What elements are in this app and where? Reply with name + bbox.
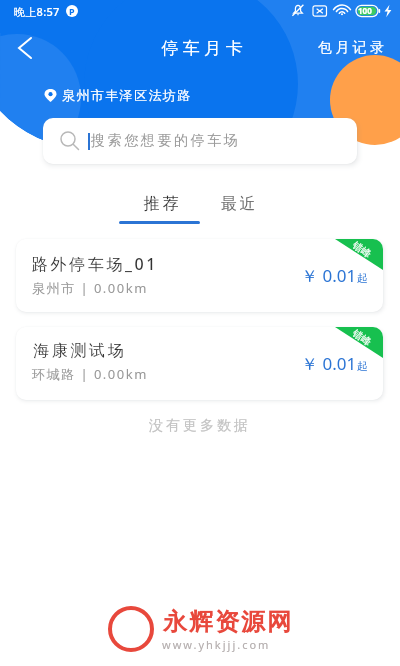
staticText: 搜索您想要的停车场 xyxy=(91,132,241,150)
staticText: 晚上8:57 xyxy=(14,4,60,19)
staticText: 起 xyxy=(357,271,368,285)
staticText: 没有更多数据 xyxy=(0,417,400,435)
staticText: 起 xyxy=(357,359,368,373)
button[interactable]: 推荐 xyxy=(132,190,190,218)
staticText: 停车月卡 xyxy=(159,38,245,59)
button[interactable]: 包月记录 xyxy=(302,31,400,65)
staticText: ￥ 0.01 xyxy=(301,264,357,287)
staticText: 泉州市 | 0.00km xyxy=(32,279,148,297)
staticText: 永辉资源网 xyxy=(162,607,292,637)
button[interactable]: 搜索您想要的停车场 xyxy=(43,118,357,164)
button[interactable]: 错峰 xyxy=(16,239,383,312)
staticText: 海康测试场 xyxy=(32,341,125,361)
staticText: 包月记录 xyxy=(316,39,386,57)
staticText: ￥ 0.01 xyxy=(301,352,357,375)
staticText: 错峰 xyxy=(350,327,374,348)
button[interactable]: 错峰 xyxy=(16,327,383,400)
staticText: www.yhkjjj.com xyxy=(162,637,271,652)
button[interactable]: Back xyxy=(6,29,44,67)
staticText: P xyxy=(69,5,75,17)
staticText: 泉州市丰泽区法坊路 xyxy=(62,87,192,103)
staticText: 错峰 xyxy=(350,239,374,260)
staticText: 路外停车场_01 xyxy=(32,253,159,275)
staticText: 100 xyxy=(358,5,372,16)
staticText: 推荐 xyxy=(142,194,180,214)
staticText: 环城路 | 0.00km xyxy=(32,365,148,383)
staticText: 最近 xyxy=(219,194,257,214)
button[interactable]: 最近 xyxy=(209,190,267,218)
